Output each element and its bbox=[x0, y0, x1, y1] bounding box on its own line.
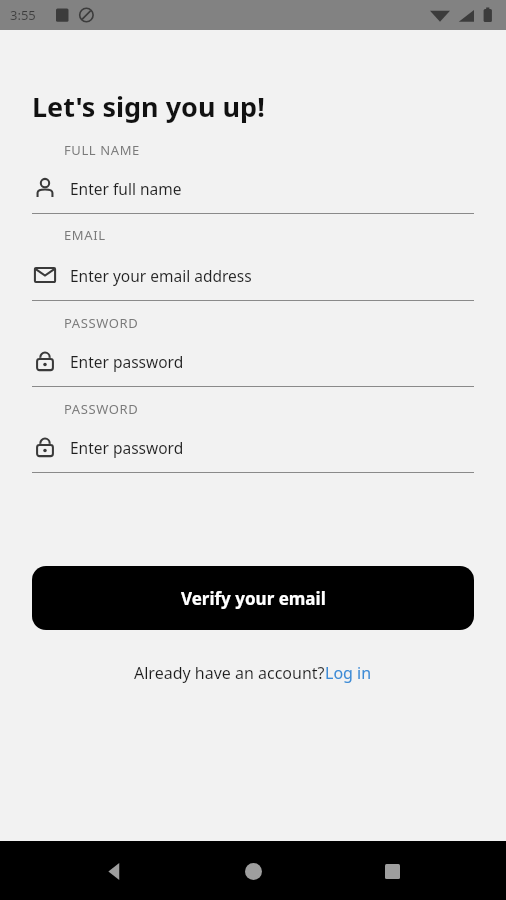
staticText: Enter password bbox=[70, 437, 184, 458]
button[interactable]: Enter password bbox=[32, 430, 474, 473]
button[interactable]: Recent apps bbox=[368, 847, 416, 895]
button[interactable]: Log in bbox=[325, 662, 372, 684]
button[interactable]: Enter full name bbox=[32, 171, 474, 214]
staticText: Verify your email bbox=[181, 587, 326, 610]
staticText: Let's sign you up! bbox=[32, 88, 265, 125]
staticText: Already have an account? bbox=[134, 662, 325, 684]
button[interactable]: Enter password bbox=[32, 344, 474, 387]
button[interactable]: Verify your email bbox=[32, 566, 474, 630]
staticText: Enter your email address bbox=[70, 265, 252, 286]
staticText: EMAIL bbox=[64, 226, 106, 244]
staticText: Log in bbox=[325, 662, 372, 684]
staticText: PASSWORD bbox=[64, 314, 139, 332]
button[interactable]: Enter your email address bbox=[32, 258, 474, 301]
button[interactable]: Home bbox=[229, 847, 277, 895]
staticText: PASSWORD bbox=[64, 400, 139, 418]
staticText: Enter password bbox=[70, 351, 184, 372]
staticText: FULL NAME bbox=[64, 141, 140, 159]
button[interactable]: Back bbox=[91, 847, 139, 895]
staticText: 3:55 bbox=[10, 6, 36, 24]
staticText: Enter full name bbox=[70, 178, 182, 199]
